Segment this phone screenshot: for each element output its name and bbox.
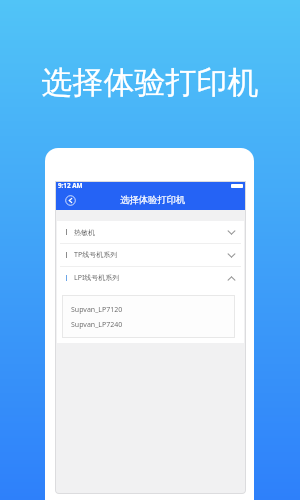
button[interactable]: Back <box>65 195 76 206</box>
staticText: 选择体验打印机 <box>0 63 300 102</box>
staticText: 选择体验打印机 <box>120 194 186 206</box>
staticText: TP线号机系列 <box>74 250 118 260</box>
button[interactable]: Supvan_LP7120 <box>62 302 235 317</box>
staticText: Supvan_LP7120 <box>71 305 123 315</box>
staticText: 9:12 AM <box>58 181 83 190</box>
button[interactable]: 热敏机 <box>57 221 244 243</box>
staticText: 热敏机 <box>74 228 95 237</box>
button[interactable]: TP线号机系列 <box>57 244 244 266</box>
button[interactable]: Supvan_LP7240 <box>62 317 235 332</box>
staticText: LPI线号机系列 <box>74 273 120 283</box>
staticText: Supvan_LP7240 <box>71 320 123 330</box>
button[interactable]: LPI线号机系列 <box>57 267 244 289</box>
